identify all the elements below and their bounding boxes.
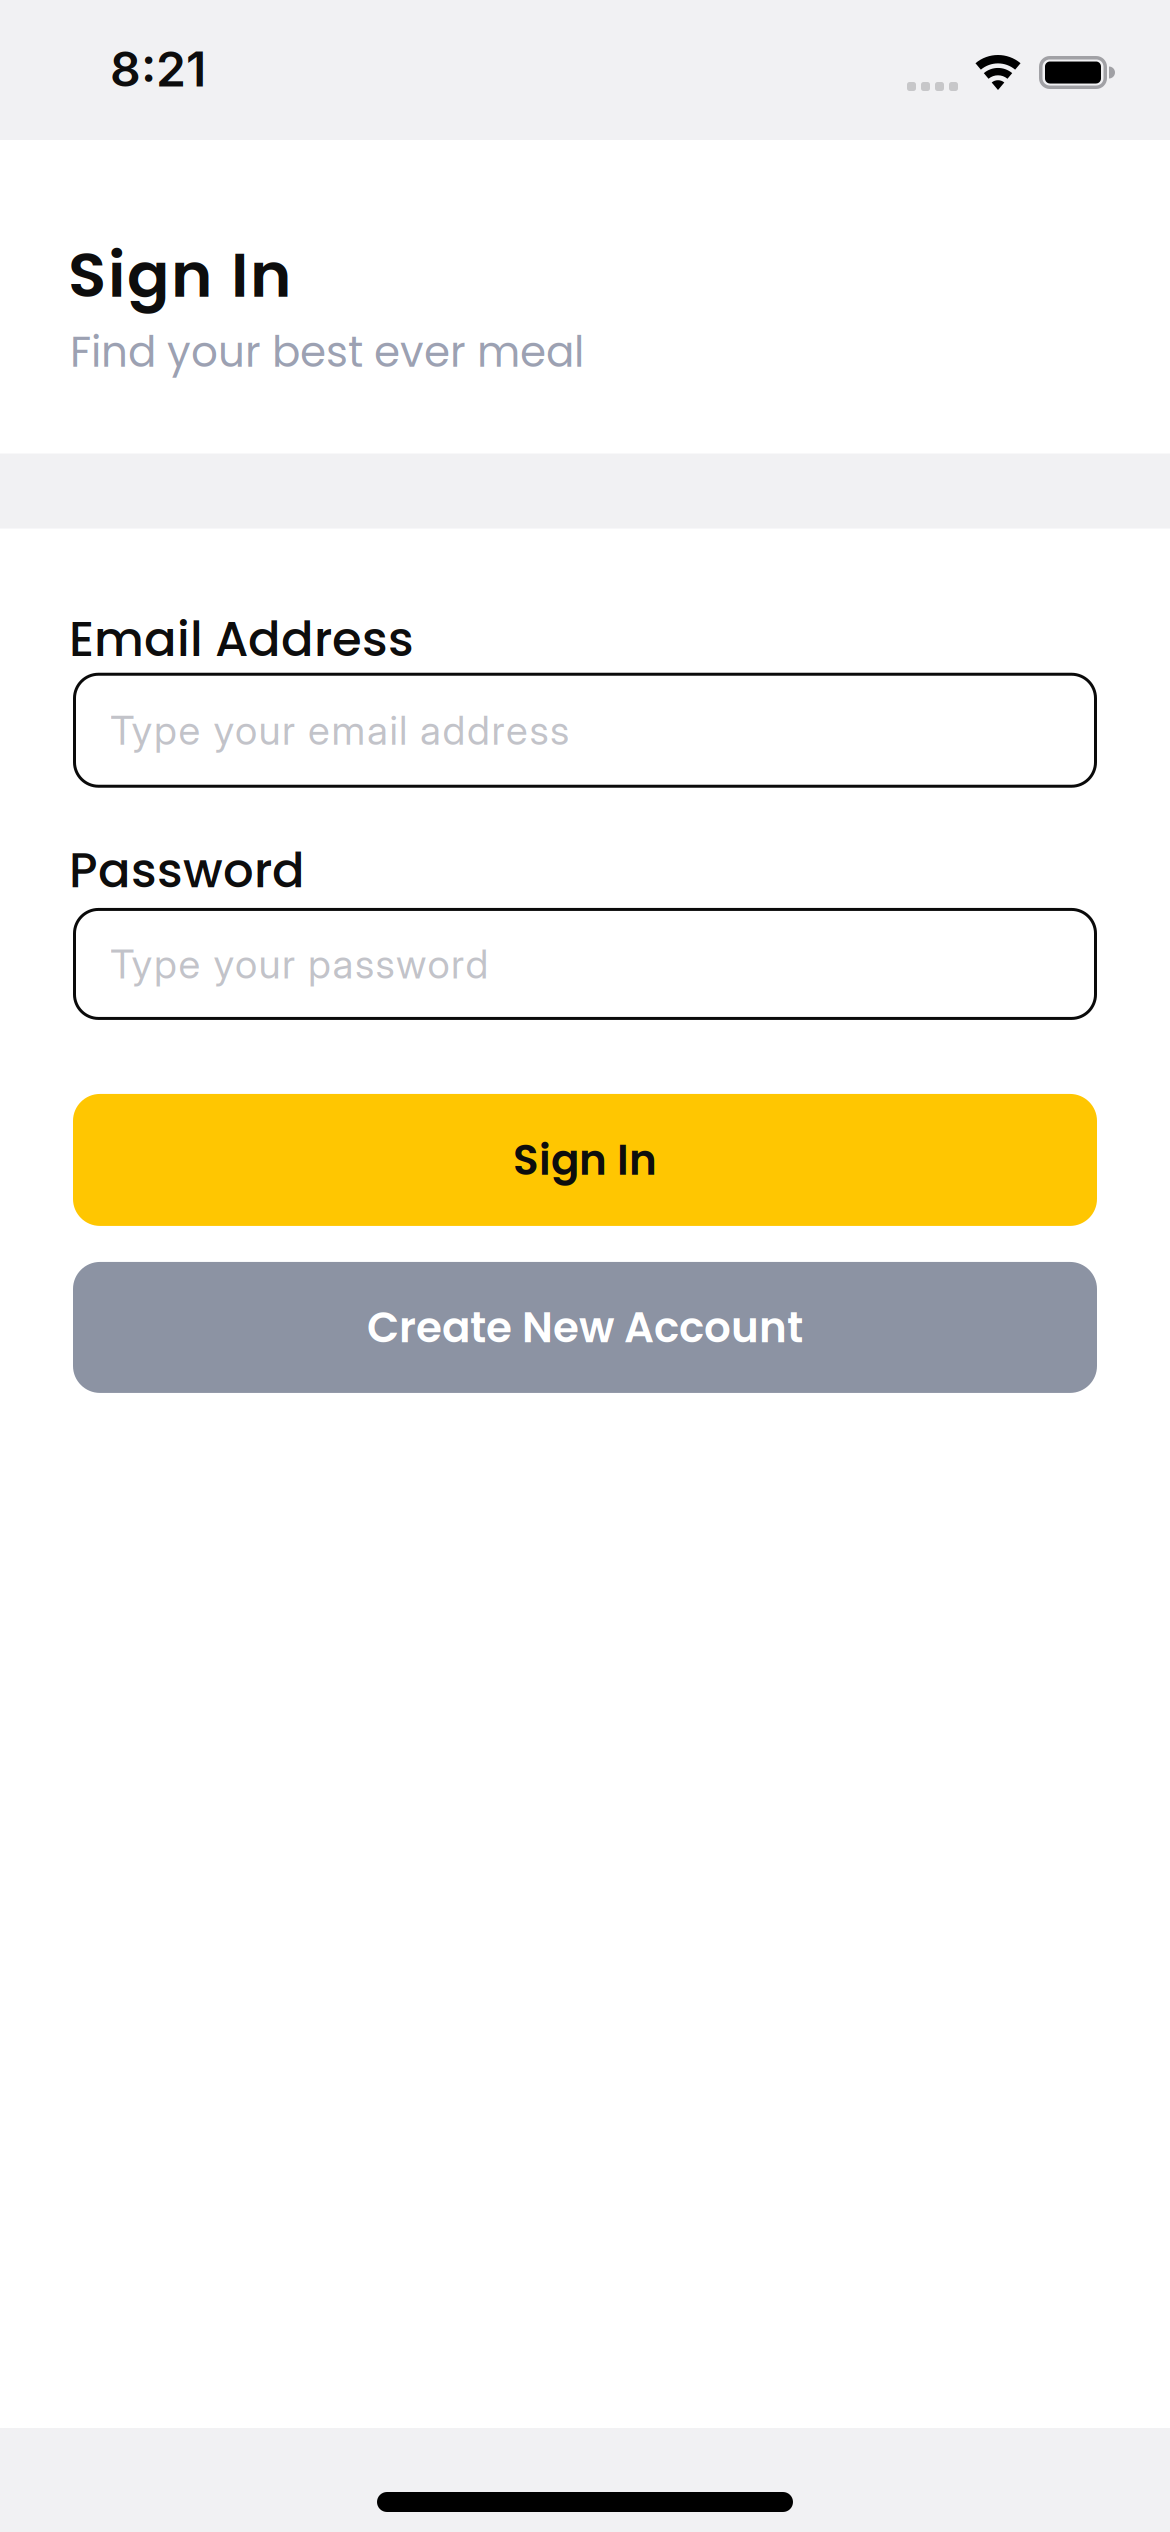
- staticText: Find your best ever meal: [70, 323, 584, 381]
- staticText: Type your password: [110, 940, 488, 988]
- staticText: Password: [69, 837, 305, 904]
- staticText: Email Address: [69, 605, 414, 673]
- staticText: Sign In: [68, 231, 291, 319]
- button[interactable]: Create New Account: [73, 1262, 1097, 1393]
- staticText: Sign In: [513, 1130, 657, 1189]
- button[interactable]: Type your password: [73, 908, 1097, 1020]
- staticText: 8:21: [110, 40, 206, 98]
- button[interactable]: Sign In: [73, 1094, 1097, 1226]
- staticText: Type your email address: [110, 706, 569, 754]
- staticText: Create New Account: [367, 1298, 803, 1357]
- button[interactable]: Type your email address: [73, 673, 1097, 788]
